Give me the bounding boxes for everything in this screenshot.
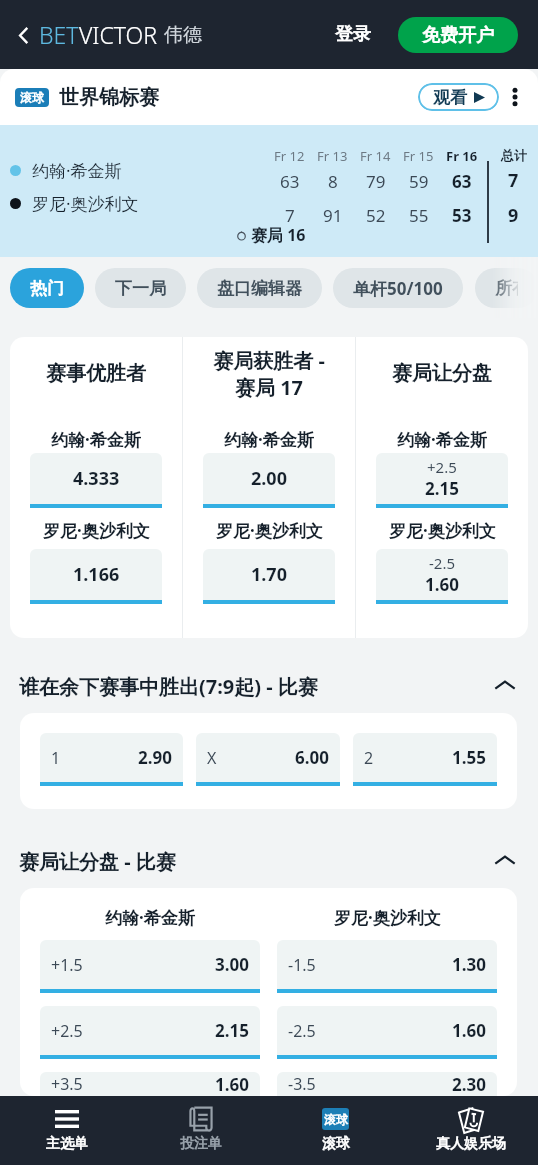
staticText: 世界锦标赛: [59, 85, 159, 110]
button[interactable]: Back: [10, 22, 36, 48]
staticText: 约翰·希金斯: [397, 428, 487, 449]
staticText: 所有比赛: [495, 278, 518, 299]
button[interactable]: +2.5: [376, 453, 508, 508]
staticText: Fr 13: [317, 147, 348, 165]
staticText: 63: [452, 170, 472, 193]
staticText: 赛局让分盘 - 比赛: [19, 848, 176, 875]
staticText: +2.5: [51, 1020, 83, 1042]
staticText: +2.5: [427, 457, 457, 477]
staticText: +3.5: [51, 1073, 83, 1095]
button[interactable]: X: [196, 733, 340, 786]
staticText: 真人娱乐场: [436, 1135, 506, 1153]
staticText: 罗尼·奥沙利文: [32, 192, 139, 215]
staticText: 伟德: [164, 23, 202, 47]
button[interactable]: 热门: [10, 268, 84, 308]
staticText: 3.00: [215, 953, 249, 976]
staticText: 59: [409, 170, 429, 193]
staticText: 赛局让分盘: [376, 361, 508, 386]
staticText: 52: [366, 204, 386, 227]
staticText: 1: [51, 747, 61, 769]
staticText: 盘口编辑器: [217, 278, 302, 299]
staticText: 罗尼·奥沙利文: [389, 519, 496, 540]
staticText: 2: [364, 747, 374, 769]
staticText: 滚球: [20, 90, 44, 105]
staticText: 热门: [30, 278, 64, 299]
staticText: Fr 12: [274, 147, 305, 165]
staticText: 2.30: [452, 1073, 486, 1096]
staticText: 2.15: [425, 477, 459, 500]
staticText: 罗尼·奥沙利文: [216, 519, 323, 540]
staticText: -1.5: [288, 954, 316, 976]
button[interactable]: 2.00: [203, 453, 335, 508]
button[interactable]: 2: [353, 733, 497, 786]
staticText: 2.00: [251, 466, 287, 491]
staticText: 观看: [433, 87, 467, 108]
staticText: 1.60: [215, 1073, 249, 1096]
staticText: 主选单: [46, 1135, 88, 1153]
staticText: 罗尼·奥沙利文: [334, 906, 441, 929]
staticText: 1.30: [452, 953, 486, 976]
button[interactable]: More options: [501, 83, 529, 111]
button[interactable]: 1.166: [30, 549, 162, 604]
staticText: 投注单: [180, 1135, 222, 1153]
button[interactable]: 盘口编辑器: [197, 268, 322, 308]
staticText: 登录: [335, 23, 371, 46]
staticText: 约翰·希金斯: [51, 428, 141, 449]
staticText: -2.5: [429, 553, 456, 573]
button[interactable]: 滚球: [268, 1096, 403, 1165]
button[interactable]: 4.333: [30, 453, 162, 508]
staticText: 赛局 16: [251, 224, 306, 246]
staticText: 总计: [501, 147, 527, 163]
button[interactable]: 谁在余下赛事中胜出(7:9起) - 比赛: [0, 659, 538, 713]
button[interactable]: -2.5: [376, 549, 508, 604]
button[interactable]: 赛局让分盘 - 比赛: [0, 834, 538, 888]
button[interactable]: 所有比赛: [475, 268, 538, 308]
staticText: 谁在余下赛事中胜出(7:9起) - 比赛: [19, 673, 318, 700]
staticText: 79: [366, 170, 386, 193]
staticText: 1.55: [452, 746, 486, 769]
button[interactable]: -1.5: [277, 940, 497, 993]
staticText: VICTOR: [79, 19, 157, 50]
button[interactable]: 免费开户: [398, 17, 518, 53]
staticText: 1.70: [251, 562, 287, 587]
staticText: -2.5: [288, 1020, 316, 1042]
button[interactable]: 主选单: [0, 1096, 134, 1165]
staticText: 1.60: [425, 573, 459, 596]
staticText: +1.5: [51, 954, 83, 976]
button[interactable]: -2.5: [277, 1006, 497, 1059]
button[interactable]: 投注单: [134, 1096, 268, 1165]
staticText: 7: [508, 168, 519, 193]
button[interactable]: -3.5: [277, 1072, 497, 1096]
button[interactable]: 观看: [418, 83, 499, 111]
staticText: 6.00: [295, 746, 329, 769]
staticText: 免费开户: [422, 24, 494, 47]
staticText: Fr 16: [446, 147, 478, 165]
staticText: 91: [323, 204, 343, 227]
staticText: 约翰·希金斯: [224, 428, 314, 449]
button[interactable]: +3.5: [40, 1072, 260, 1096]
staticText: 罗尼·奥沙利文: [43, 519, 150, 540]
staticText: BET: [39, 19, 79, 50]
button[interactable]: 真人娱乐场: [403, 1096, 538, 1165]
staticText: 8: [328, 170, 338, 193]
staticText: 赛局获胜者 - 赛局 17: [203, 347, 335, 401]
staticText: 约翰·希金斯: [32, 159, 122, 182]
button[interactable]: 下一局: [95, 268, 186, 308]
staticText: 9: [508, 203, 519, 228]
staticText: 1.60: [452, 1019, 486, 1042]
button[interactable]: 登录: [326, 17, 380, 52]
staticText: 4.333: [73, 466, 120, 491]
staticText: 1.166: [73, 562, 120, 587]
button[interactable]: 1.70: [203, 549, 335, 604]
staticText: 7: [285, 204, 295, 227]
button[interactable]: 1: [40, 733, 183, 786]
staticText: X: [207, 747, 217, 769]
staticText: 53: [452, 204, 472, 227]
button[interactable]: +2.5: [40, 1006, 260, 1059]
staticText: 滚球: [322, 1135, 350, 1153]
button[interactable]: +1.5: [40, 940, 260, 993]
staticText: Fr 14: [360, 147, 391, 165]
staticText: -3.5: [288, 1073, 316, 1095]
staticText: 55: [409, 204, 429, 227]
button[interactable]: 单杆50/100: [333, 268, 463, 308]
